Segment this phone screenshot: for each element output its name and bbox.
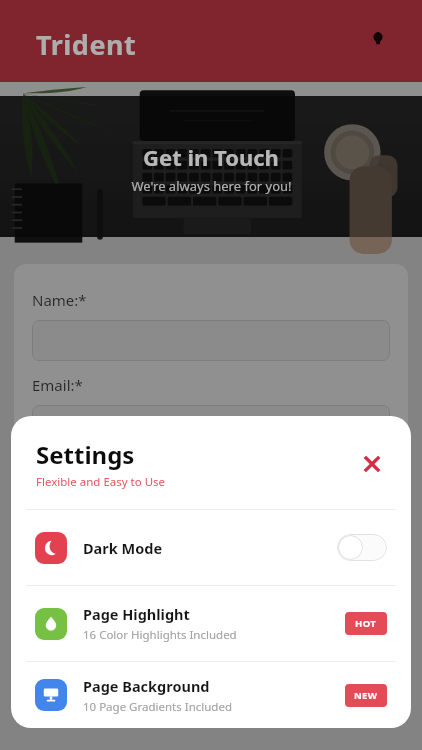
- button[interactable]: [32, 320, 390, 361]
- button[interactable]: [32, 405, 390, 446]
- button[interactable]: Dark Mode: [11, 510, 411, 585]
- staticText: Page Background: [83, 676, 210, 696]
- button[interactable]: Tips: [365, 26, 391, 52]
- staticText: Email:*: [32, 375, 83, 395]
- staticText: Dark Mode: [83, 538, 163, 558]
- staticText: NEW: [354, 689, 378, 702]
- staticText: Settings: [36, 438, 135, 471]
- staticText: 16 Color Highlights Included: [83, 627, 237, 643]
- button[interactable]: NEW: [345, 684, 387, 707]
- staticText: 10 Page Gradients Included: [83, 699, 232, 715]
- staticText: We're always here for you!: [131, 177, 292, 195]
- staticText: Page Highlight: [83, 604, 190, 624]
- button[interactable]: Dark Mode toggle, off: [337, 534, 387, 561]
- staticText: HOT: [355, 617, 377, 630]
- staticText: Flexible and Easy to Use: [36, 474, 166, 490]
- button[interactable]: Page Highlight: [11, 586, 411, 661]
- button[interactable]: Close: [355, 447, 389, 481]
- button[interactable]: Page Background: [11, 662, 411, 728]
- button[interactable]: HOT: [345, 612, 387, 635]
- staticText: Name:*: [32, 290, 87, 310]
- staticText: Get in Touch: [143, 142, 279, 172]
- staticText: Trident: [36, 26, 137, 63]
